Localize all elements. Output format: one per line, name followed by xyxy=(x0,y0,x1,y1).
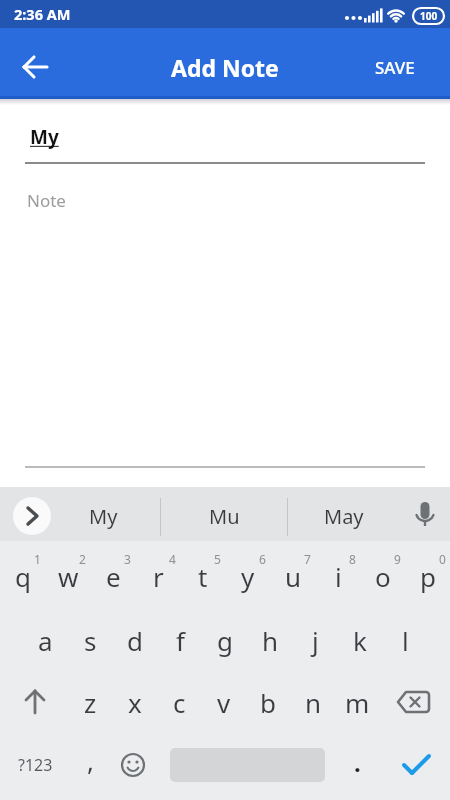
staticText: t xyxy=(198,559,208,594)
staticText: l xyxy=(402,623,409,658)
staticText: 2:36 AM xyxy=(14,4,71,24)
staticText: e xyxy=(106,559,121,594)
button[interactable] xyxy=(13,680,57,724)
staticText: ?123 xyxy=(18,754,53,776)
button[interactable] xyxy=(113,745,153,785)
button[interactable]: t xyxy=(181,546,225,606)
staticText: Add Note xyxy=(171,52,279,83)
button[interactable]: u xyxy=(271,546,315,606)
button[interactable]: b xyxy=(246,672,290,732)
staticText: SAVE xyxy=(375,56,415,79)
button[interactable]: i xyxy=(316,546,360,606)
staticText: n xyxy=(305,685,322,720)
staticText: 8 xyxy=(349,551,356,567)
staticText: 1 xyxy=(34,551,41,567)
staticText: u xyxy=(285,559,302,594)
staticText: 3 xyxy=(124,551,131,567)
staticText: o xyxy=(375,559,391,594)
staticText: y xyxy=(241,559,255,594)
staticText: a xyxy=(38,623,53,658)
button[interactable]: p xyxy=(406,546,450,606)
button[interactable]: x xyxy=(113,672,157,732)
staticText: . xyxy=(354,746,361,779)
button[interactable] xyxy=(405,496,445,536)
staticText: f xyxy=(176,623,185,658)
staticText: k xyxy=(353,623,367,658)
button[interactable]: r xyxy=(136,546,180,606)
staticText: r xyxy=(153,559,164,594)
button[interactable]: e xyxy=(91,546,135,606)
button[interactable]: a xyxy=(23,610,67,670)
button[interactable]: n xyxy=(291,672,335,732)
button[interactable] xyxy=(13,497,51,535)
staticText: 5 xyxy=(214,551,221,567)
staticText: 4 xyxy=(169,551,176,567)
staticText: May xyxy=(324,503,364,530)
staticText: q xyxy=(15,559,31,594)
staticText: Note xyxy=(27,189,66,212)
button[interactable] xyxy=(12,44,58,90)
button[interactable]: d xyxy=(113,610,157,670)
button[interactable]: m xyxy=(335,672,379,732)
staticText: 9 xyxy=(394,551,401,567)
staticText: My xyxy=(89,503,118,530)
staticText: 0 xyxy=(439,551,446,567)
button[interactable]: o xyxy=(361,546,405,606)
button[interactable]: My xyxy=(53,491,153,541)
button[interactable]: c xyxy=(157,672,201,732)
button[interactable]: ?123 xyxy=(5,740,65,790)
staticText: j xyxy=(312,623,319,658)
button[interactable]: SAVE xyxy=(360,45,430,89)
staticText: c xyxy=(173,685,186,720)
button[interactable]: f xyxy=(158,610,202,670)
button[interactable]: k xyxy=(338,610,382,670)
button[interactable]: h xyxy=(248,610,292,670)
button[interactable]: . xyxy=(337,737,377,787)
staticText: My xyxy=(30,124,59,150)
button[interactable]: l xyxy=(383,610,427,670)
button[interactable]: Mu xyxy=(174,491,274,541)
staticText: w xyxy=(58,559,79,594)
button[interactable]: y xyxy=(226,546,270,606)
staticText: b xyxy=(260,685,276,720)
staticText: z xyxy=(84,685,97,720)
button[interactable]: z xyxy=(68,672,112,732)
staticText: 6 xyxy=(259,551,266,567)
button[interactable]: w xyxy=(46,546,90,606)
staticText: g xyxy=(217,623,233,658)
staticText: Mu xyxy=(209,503,240,530)
button[interactable]: , xyxy=(70,735,110,785)
staticText: p xyxy=(420,559,436,594)
staticText: , xyxy=(87,743,94,778)
button[interactable]: g xyxy=(203,610,247,670)
staticText: 7 xyxy=(304,551,311,567)
button[interactable]: s xyxy=(68,610,112,670)
button[interactable]: v xyxy=(202,672,246,732)
staticText: h xyxy=(262,623,279,658)
staticText: i xyxy=(335,559,342,594)
staticText: 2 xyxy=(79,551,86,567)
staticText: 100 xyxy=(420,9,438,23)
button[interactable]: May xyxy=(294,491,394,541)
staticText: m xyxy=(345,685,370,720)
button[interactable] xyxy=(395,743,439,787)
button[interactable]: q xyxy=(1,546,45,606)
staticText: x xyxy=(128,685,142,720)
staticText: s xyxy=(84,623,97,658)
button[interactable] xyxy=(392,680,436,724)
button[interactable]: j xyxy=(293,610,337,670)
staticText: d xyxy=(127,623,143,658)
staticText: v xyxy=(217,685,231,720)
